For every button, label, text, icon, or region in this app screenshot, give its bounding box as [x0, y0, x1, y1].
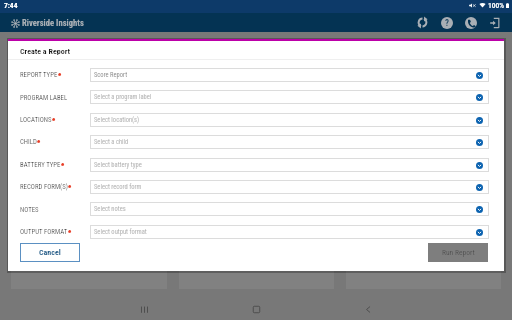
staticText: Riverside Insights: [22, 18, 84, 28]
button[interactable]: Select record form: [90, 180, 489, 194]
staticText: LOCATIONS: [20, 116, 52, 124]
staticText: BATTERY TYPE: [20, 161, 61, 169]
button[interactable]: Call support: [463, 15, 478, 30]
button[interactable]: Cancel: [20, 243, 80, 262]
button[interactable]: Select output format: [90, 225, 489, 239]
button[interactable]: Home: [246, 299, 266, 319]
staticText: NOTES: [20, 206, 39, 214]
button[interactable]: Select battery type: [90, 158, 489, 172]
staticText: ?: [445, 18, 450, 29]
button[interactable]: Select notes: [90, 202, 489, 216]
button[interactable]: Log out: [487, 15, 502, 30]
staticText: Select location(s): [94, 116, 140, 124]
staticText: Select output format: [94, 228, 147, 236]
staticText: RECORD FORM(S): [20, 183, 68, 191]
staticText: Select record form: [94, 183, 142, 191]
staticText: REPORT TYPE: [20, 71, 58, 79]
staticText: Cancel: [39, 248, 61, 257]
staticText: Score Report: [94, 71, 128, 79]
staticText: OUTPUT FORMAT: [20, 228, 68, 236]
staticText: 100%: [488, 1, 505, 10]
button[interactable]: Help: [439, 15, 454, 30]
staticText: Select battery type: [94, 161, 142, 169]
staticText: Select a child: [94, 138, 129, 146]
button[interactable]: Recents: [134, 299, 154, 319]
staticText: Select notes: [94, 205, 126, 213]
button[interactable]: Back: [358, 299, 378, 319]
staticText: Create a Report: [20, 47, 70, 56]
button[interactable]: Refresh: [415, 15, 430, 30]
button[interactable]: Select a program label: [90, 90, 489, 104]
staticText: CHILD: [20, 138, 37, 146]
button[interactable]: Score Report: [90, 68, 489, 82]
button[interactable]: Run Report: [428, 243, 488, 262]
staticText: Select a program label: [94, 93, 152, 101]
button[interactable]: Select a child: [90, 135, 489, 149]
staticText: 7:44: [4, 1, 18, 10]
button[interactable]: Select location(s): [90, 113, 489, 127]
staticText: Run Report: [442, 248, 475, 257]
staticText: PROGRAM LABEL: [20, 94, 68, 102]
